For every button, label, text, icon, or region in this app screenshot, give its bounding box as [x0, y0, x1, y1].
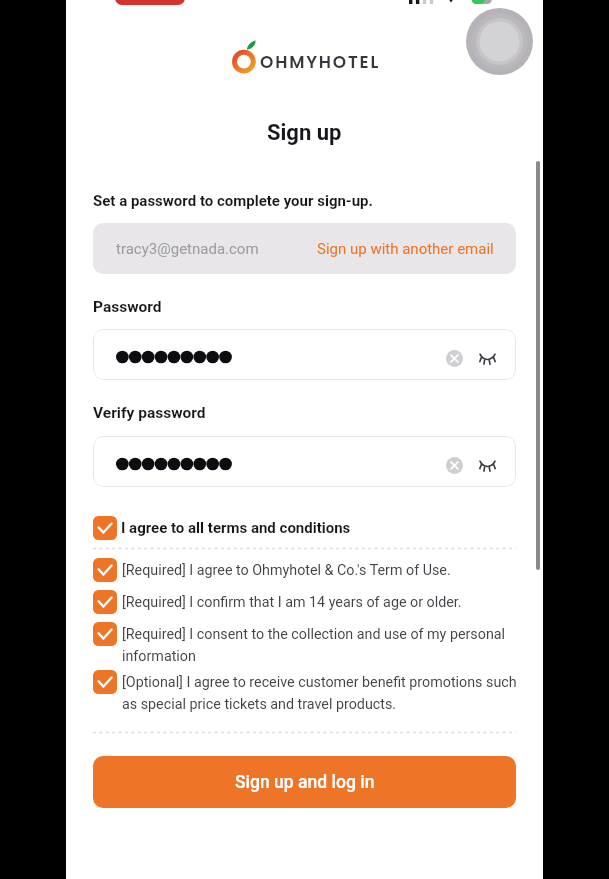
- button[interactable]: [Required] I agree to Ohmyhotel & Co.'s …: [93, 558, 526, 582]
- button[interactable]: Clear: [441, 452, 467, 478]
- staticText: [Required] I agree to Ohmyhotel & Co.'s …: [122, 558, 518, 580]
- button[interactable]: Show password: [474, 452, 500, 478]
- staticText: [Optional] I agree to receive customer b…: [122, 670, 518, 714]
- button[interactable]: [Required] I consent to the collection a…: [93, 622, 526, 666]
- button[interactable]: Clear: [441, 345, 467, 371]
- button[interactable]: Sign up with another email: [296, 223, 516, 274]
- button[interactable]: [Optional] I agree to receive customer b…: [93, 670, 526, 714]
- staticText: Set a password to complete your sign-up.: [93, 192, 373, 210]
- staticText: Sign up with another email: [317, 240, 494, 258]
- staticText: I agree to all terms and conditions: [121, 519, 351, 537]
- button[interactable]: Show password: [474, 345, 500, 371]
- staticText: Verify password: [93, 404, 206, 422]
- button[interactable]: [Required] I confirm that I am 14 years …: [93, 590, 526, 614]
- staticText: OHMYHOTEL: [260, 50, 381, 74]
- staticText: [Required] I consent to the collection a…: [122, 622, 518, 666]
- staticText: [Required] I confirm that I am 14 years …: [122, 590, 518, 612]
- staticText: Sign up and log in: [235, 772, 375, 793]
- staticText: tracy3@getnada.com: [116, 240, 259, 258]
- staticText: Password: [93, 298, 162, 316]
- button[interactable]: I agree to all terms and conditions: [93, 515, 516, 540]
- staticText: Sign up: [267, 120, 342, 146]
- button[interactable]: Sign up and log in: [93, 756, 516, 808]
